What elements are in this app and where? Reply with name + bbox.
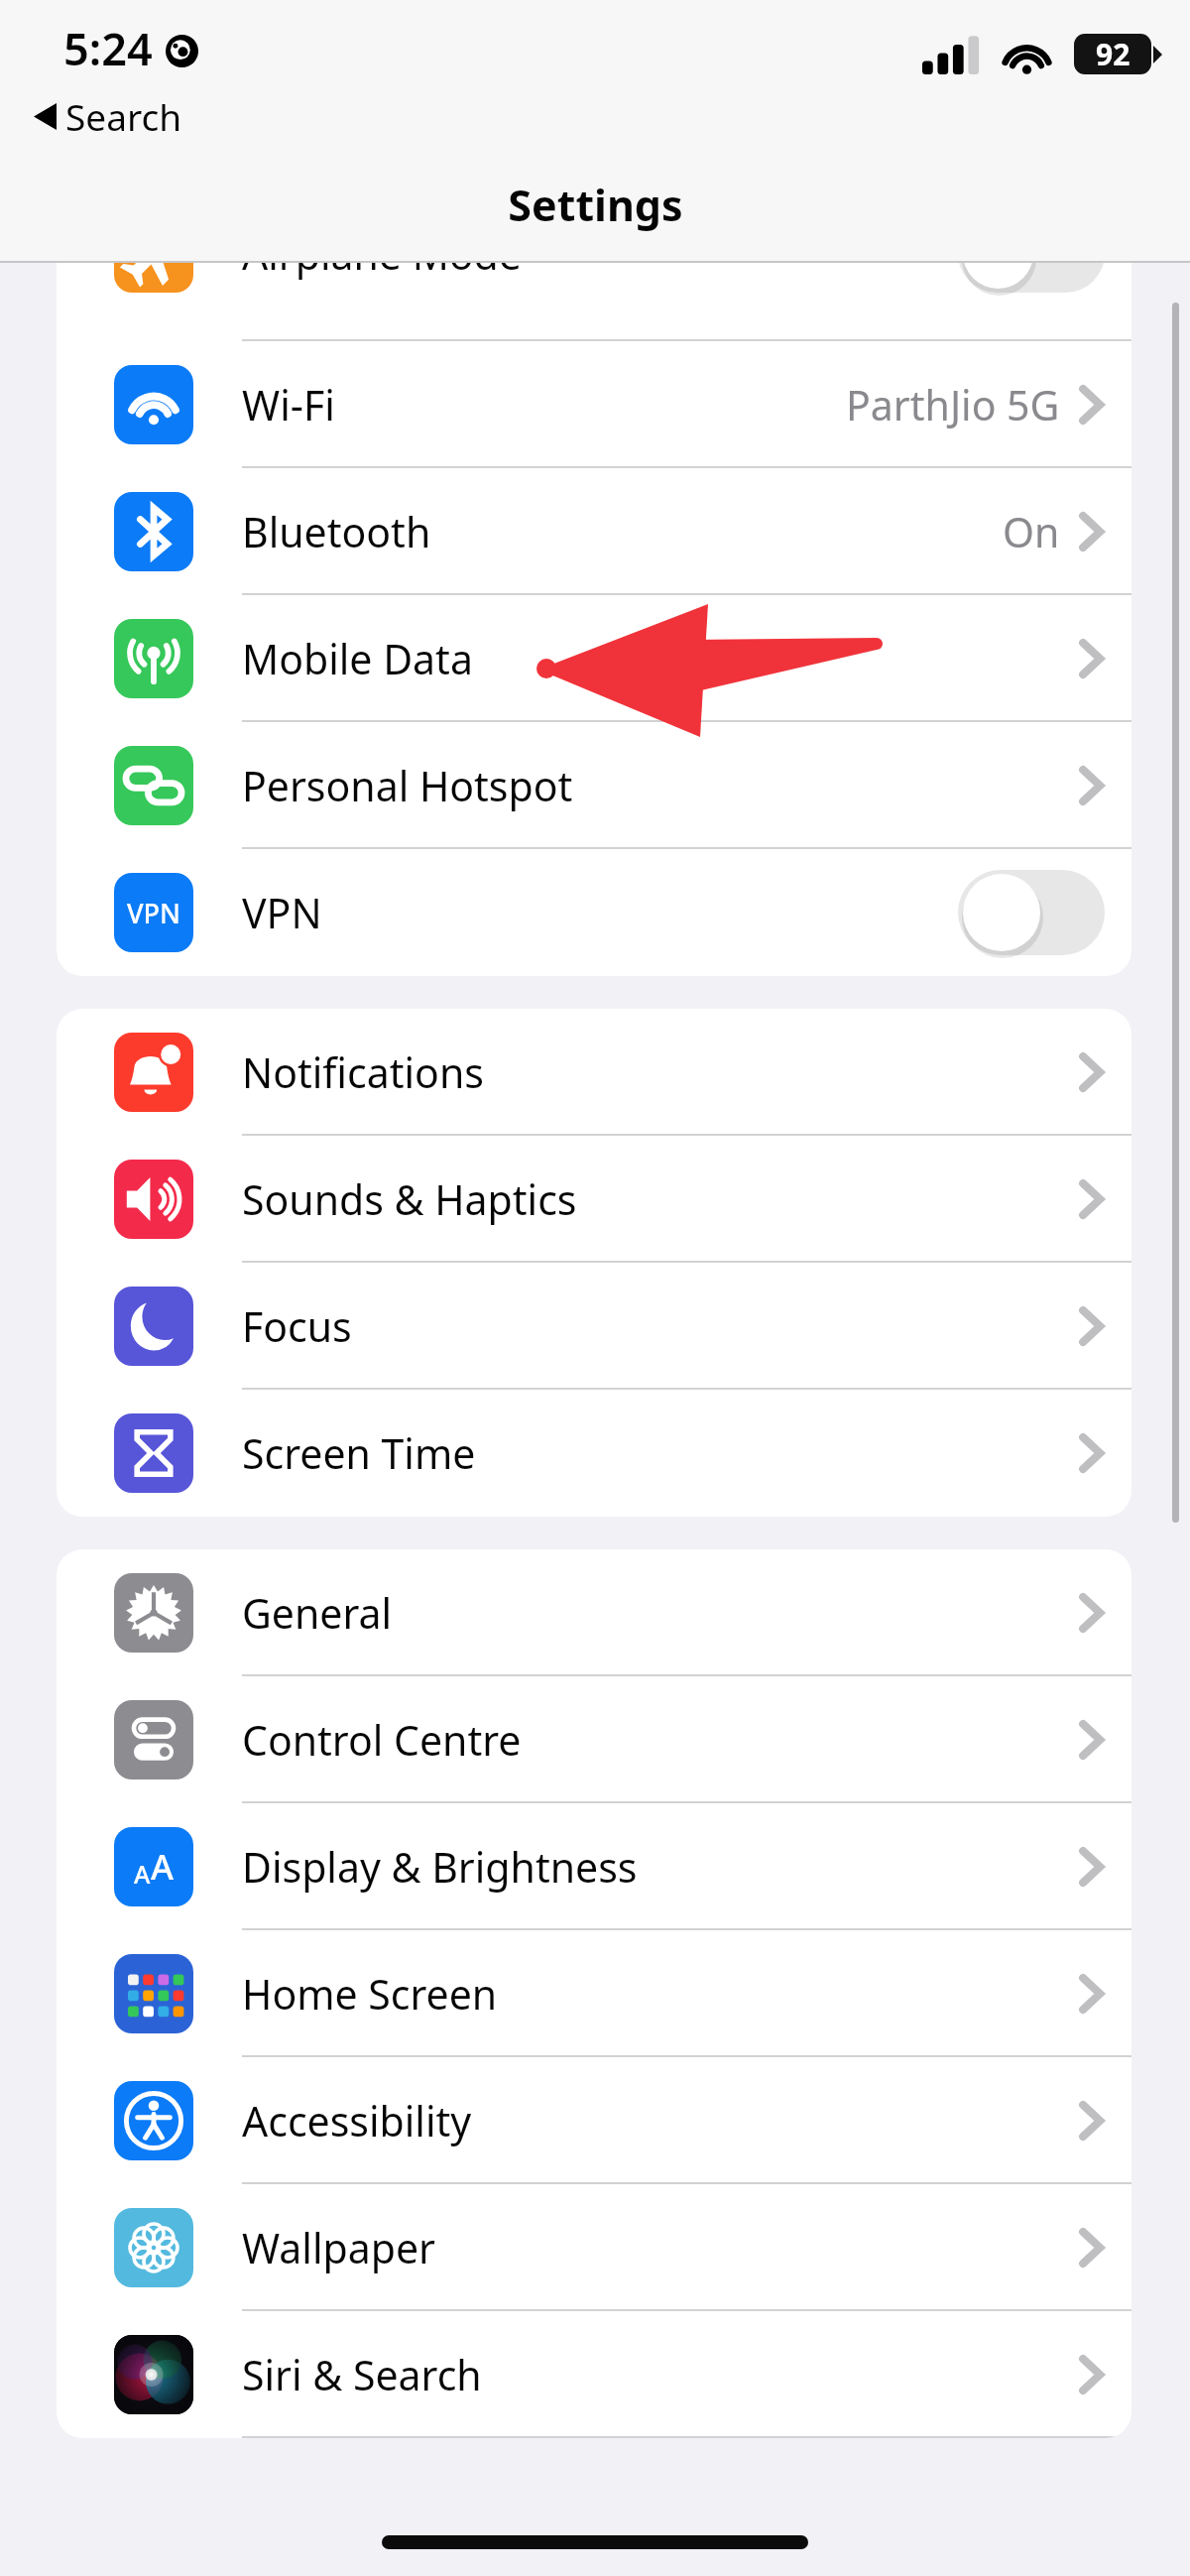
- staticText: Home Screen: [242, 1966, 1080, 2022]
- staticText: Search: [65, 91, 182, 141]
- staticText: 92: [1096, 34, 1130, 74]
- staticText: ParthJio 5G: [846, 377, 1060, 432]
- staticText: Siri & Search: [242, 2347, 1080, 2402]
- button[interactable]: Wallpaper: [57, 2184, 1131, 2311]
- button[interactable]: Toggle: [958, 263, 1105, 293]
- staticText: Focus: [242, 1298, 1080, 1354]
- button[interactable]: General: [57, 1549, 1131, 1676]
- button[interactable]: VPN: [57, 849, 1131, 976]
- button[interactable]: Sounds & Haptics: [57, 1136, 1131, 1263]
- button[interactable]: Mobile Data: [57, 595, 1131, 722]
- staticText: Personal Hotspot: [242, 758, 1080, 813]
- staticText: Accessibility: [242, 2093, 1080, 2148]
- button[interactable]: Search: [28, 87, 188, 145]
- staticText: General: [242, 1585, 1080, 1641]
- staticText: Wallpaper: [242, 2220, 1080, 2275]
- staticText: On: [1003, 504, 1060, 559]
- button[interactable]: Toggle: [958, 870, 1105, 955]
- button[interactable]: Airplane Mode: [57, 263, 1131, 341]
- button[interactable]: Control Centre: [57, 1676, 1131, 1803]
- staticText: VPN: [242, 885, 958, 940]
- button[interactable]: Focus: [57, 1263, 1131, 1390]
- staticText: Wi-Fi: [242, 377, 846, 432]
- staticText: A: [151, 1843, 174, 1891]
- staticText: Airplane Mode: [242, 263, 958, 282]
- button[interactable]: Personal Hotspot: [57, 722, 1131, 849]
- staticText: Control Centre: [242, 1712, 1080, 1768]
- button[interactable]: Accessibility: [57, 2057, 1131, 2184]
- button[interactable]: Home Screen: [57, 1930, 1131, 2057]
- staticText: Screen Time: [242, 1425, 1080, 1481]
- button[interactable]: Siri & Search: [57, 2311, 1131, 2438]
- staticText: Settings: [508, 176, 683, 234]
- button[interactable]: A: [57, 1803, 1131, 1930]
- staticText: 5:24: [63, 18, 153, 78]
- staticText: VPN: [127, 895, 181, 931]
- staticText: Display & Brightness: [242, 1839, 1080, 1895]
- staticText: Bluetooth: [242, 504, 1003, 559]
- button[interactable]: Screen Time: [57, 1390, 1131, 1517]
- staticText: Notifications: [242, 1044, 1080, 1100]
- staticText: Mobile Data: [242, 631, 1080, 686]
- button[interactable]: Bluetooth: [57, 468, 1131, 595]
- button[interactable]: Notifications: [57, 1009, 1131, 1136]
- button[interactable]: Wi-Fi: [57, 341, 1131, 468]
- staticText: A: [134, 1857, 151, 1891]
- staticText: Sounds & Haptics: [242, 1171, 1080, 1227]
